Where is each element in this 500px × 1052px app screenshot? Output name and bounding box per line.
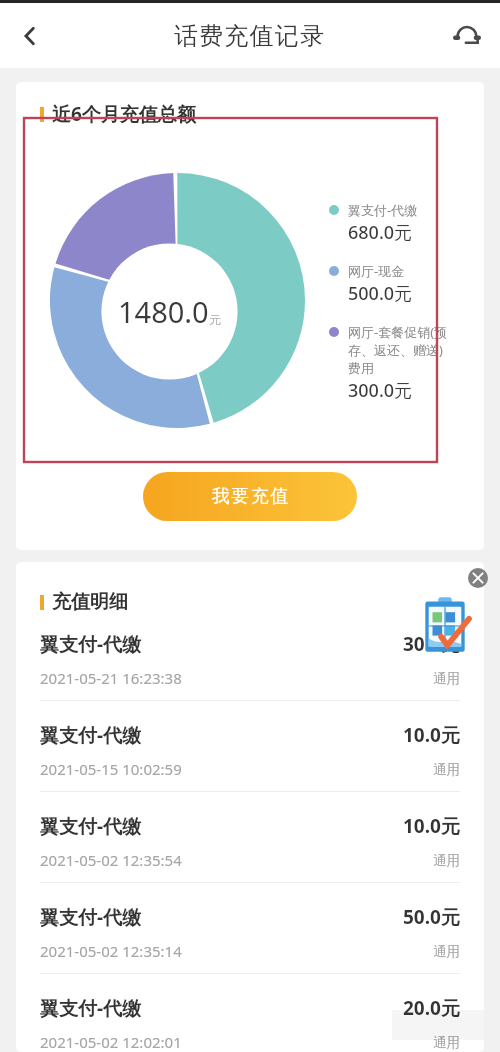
staticText: 通用	[433, 1034, 460, 1051]
staticText: 680.0元	[348, 220, 413, 245]
staticText: 翼支付-代缴	[348, 201, 468, 219]
staticText: 翼支付-代缴	[40, 904, 142, 930]
staticText: 元	[209, 312, 221, 327]
staticText: 翼支付-代缴	[40, 995, 142, 1021]
staticText: 2021-05-21 16:23:38	[40, 668, 182, 688]
button[interactable]: 翼支付-代缴	[16, 893, 484, 984]
button[interactable]: 翼支付-代缴	[16, 711, 484, 802]
button[interactable]: 翼支付-代缴	[16, 984, 484, 1052]
staticText: 50.0元	[403, 904, 460, 930]
staticText: 30.0元	[403, 631, 460, 657]
button[interactable]: 翼支付-代缴	[16, 620, 484, 711]
staticText: 充值明细	[52, 590, 128, 614]
staticText: 通用	[433, 852, 460, 869]
staticText: 通用	[433, 761, 460, 778]
staticText: 1480.0	[118, 292, 209, 331]
button[interactable]: Survey	[421, 596, 469, 656]
staticText: 翼支付-代缴	[40, 813, 142, 839]
staticText: 通用	[433, 943, 460, 960]
staticText: 翼支付-代缴	[40, 722, 142, 748]
staticText: 300.0元	[348, 378, 413, 403]
button[interactable]: 我要充值	[143, 472, 357, 521]
button[interactable]: Customer service	[447, 16, 487, 56]
staticText: 我要充值	[211, 485, 289, 508]
button[interactable]: Close advertisement	[468, 568, 488, 588]
staticText: 近6个月充值总额	[52, 101, 196, 127]
staticText: 翼支付-代缴	[40, 631, 142, 657]
staticText: 500.0元	[348, 281, 413, 306]
staticText: 网厅-现金	[348, 262, 468, 280]
button[interactable]: 翼支付-代缴	[16, 802, 484, 893]
staticText: 话费充值记录	[174, 21, 326, 51]
staticText: 2021-05-02 12:35:54	[40, 850, 182, 870]
staticText: 2021-05-02 12:35:14	[40, 941, 182, 961]
staticText: 通用	[433, 670, 460, 687]
staticText: 2021-05-15 10:02:59	[40, 759, 182, 779]
staticText: 20.0元	[403, 995, 460, 1021]
staticText: 网厅-套餐促销(预存、返还、赠送)费用	[348, 323, 452, 377]
staticText: 10.0元	[403, 813, 460, 839]
staticText: 2021-05-02 12:02:01	[40, 1032, 182, 1052]
staticText: 10.0元	[403, 722, 460, 748]
button[interactable]: Back	[10, 16, 50, 56]
